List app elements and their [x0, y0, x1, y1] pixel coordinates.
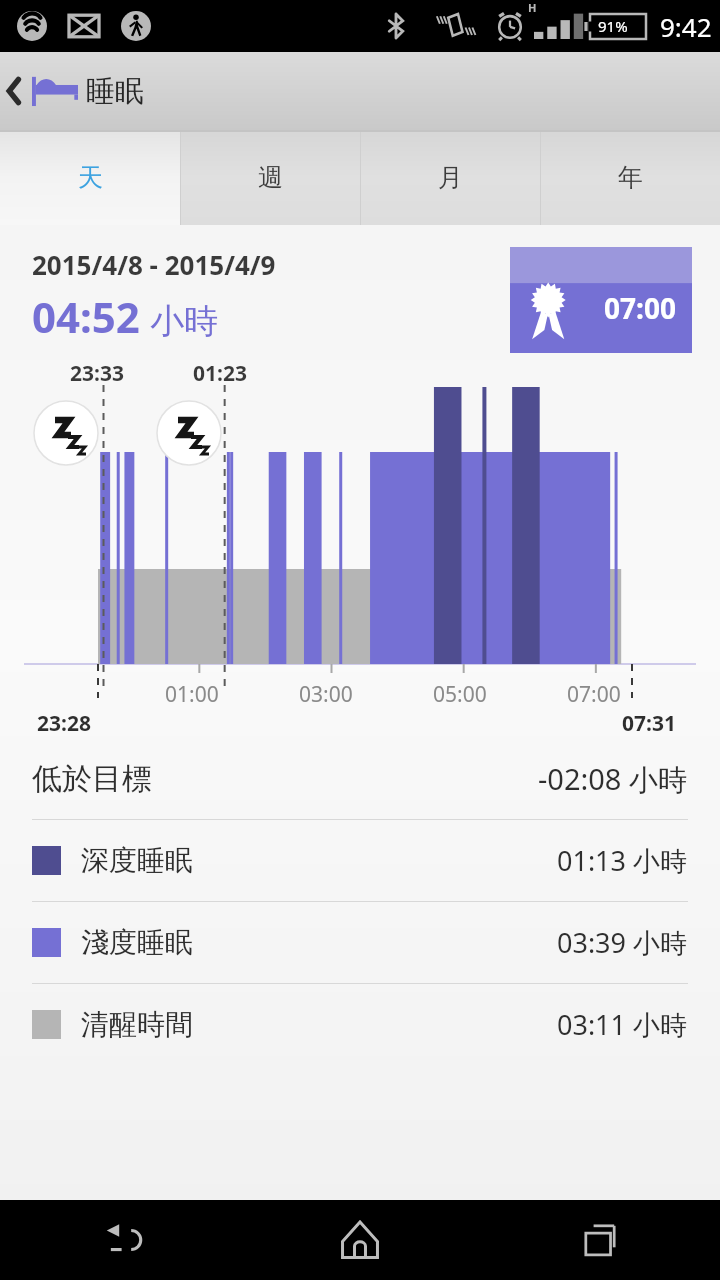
button[interactable]: Recent apps — [480, 1200, 720, 1280]
staticText: 月 — [438, 162, 463, 193]
button[interactable]: 深度睡眠 — [0, 820, 720, 901]
button[interactable]: Home — [240, 1200, 480, 1280]
staticText: 03:00 — [299, 680, 353, 709]
staticText: H — [528, 0, 537, 15]
staticText: 清醒時間 — [81, 1007, 193, 1042]
staticText: 91% — [598, 16, 628, 36]
staticText: 05:00 — [433, 680, 487, 709]
button[interactable]: 年 — [540, 130, 720, 225]
staticText: 低於目標 — [32, 760, 152, 798]
button[interactable]: 週 — [180, 130, 360, 225]
staticText: 深度睡眠 — [81, 843, 193, 878]
staticText: 01:00 — [165, 680, 219, 709]
staticText: 淺度睡眠 — [81, 925, 193, 960]
staticText: 年 — [618, 162, 643, 193]
staticText: 07:00 — [604, 289, 676, 327]
staticText: 睡眠 — [86, 73, 144, 110]
button[interactable]: 低於目標 — [0, 738, 720, 819]
staticText: 23:28 — [37, 709, 91, 738]
button[interactable]: 清醒時間 — [0, 984, 720, 1065]
button[interactable]: Back — [0, 1200, 240, 1280]
staticText: 週 — [258, 162, 283, 193]
button[interactable]: 月 — [360, 130, 540, 225]
button[interactable]: 天 — [0, 130, 180, 225]
button[interactable]: Back — [0, 52, 86, 130]
staticText: 01:23 — [193, 359, 247, 388]
staticText: 03:39 小時 — [557, 924, 688, 961]
staticText: 23:33 — [70, 359, 124, 388]
staticText: 01:13 小時 — [557, 842, 688, 879]
staticText: 07:31 — [622, 709, 676, 738]
staticText: -02:08 小時 — [538, 759, 688, 799]
staticText: 03:11 小時 — [557, 1006, 688, 1043]
staticText: 小時 — [150, 300, 218, 343]
staticText: 04:52 — [32, 288, 140, 345]
button[interactable]: 07:00 — [510, 247, 692, 353]
staticText: 9:42 — [660, 9, 712, 44]
staticText: 07:00 — [567, 680, 621, 709]
staticText: 2015/4/8 - 2015/4/9 — [32, 247, 276, 282]
staticText: 天 — [78, 162, 103, 193]
button[interactable]: 淺度睡眠 — [0, 902, 720, 983]
